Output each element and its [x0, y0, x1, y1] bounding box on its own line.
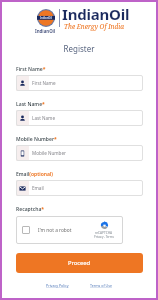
button[interactable]: Terms of Use: [90, 283, 112, 288]
button[interactable]: Last Name: [16, 110, 143, 126]
staticText: Register: [0, 43, 158, 54]
staticText: Email(optional): [16, 171, 53, 178]
staticText: Email: [32, 185, 44, 191]
button[interactable]: First Name: [16, 75, 143, 91]
staticText: Recaptcha*: [16, 206, 45, 213]
staticText: First Name*: [16, 66, 46, 73]
staticText: Last Name: [32, 115, 55, 121]
staticText: Proceed: [68, 259, 91, 267]
staticText: IndianOil: [40, 16, 52, 20]
staticText: IndianOil: [62, 4, 130, 24]
button[interactable]: Privacy Policy: [46, 283, 69, 288]
button[interactable]: Proceed: [16, 253, 143, 273]
staticText: Mobile Number: [32, 150, 66, 156]
button[interactable]: Email: [16, 180, 143, 196]
staticText: I'm not a robot: [38, 227, 72, 234]
staticText: First Name: [32, 80, 56, 86]
staticText: IndianOil: [35, 28, 56, 34]
staticText: Last Name*: [16, 101, 45, 108]
button[interactable]: Mobile Number: [16, 145, 143, 161]
button[interactable]: I'm not a robot: [16, 216, 123, 244]
staticText: The Energy Of India: [64, 22, 124, 31]
staticText: Mobile Number*: [16, 136, 57, 143]
staticText: reCAPTCHA: [95, 231, 113, 235]
staticText: Privacy - Terms: [94, 235, 114, 239]
